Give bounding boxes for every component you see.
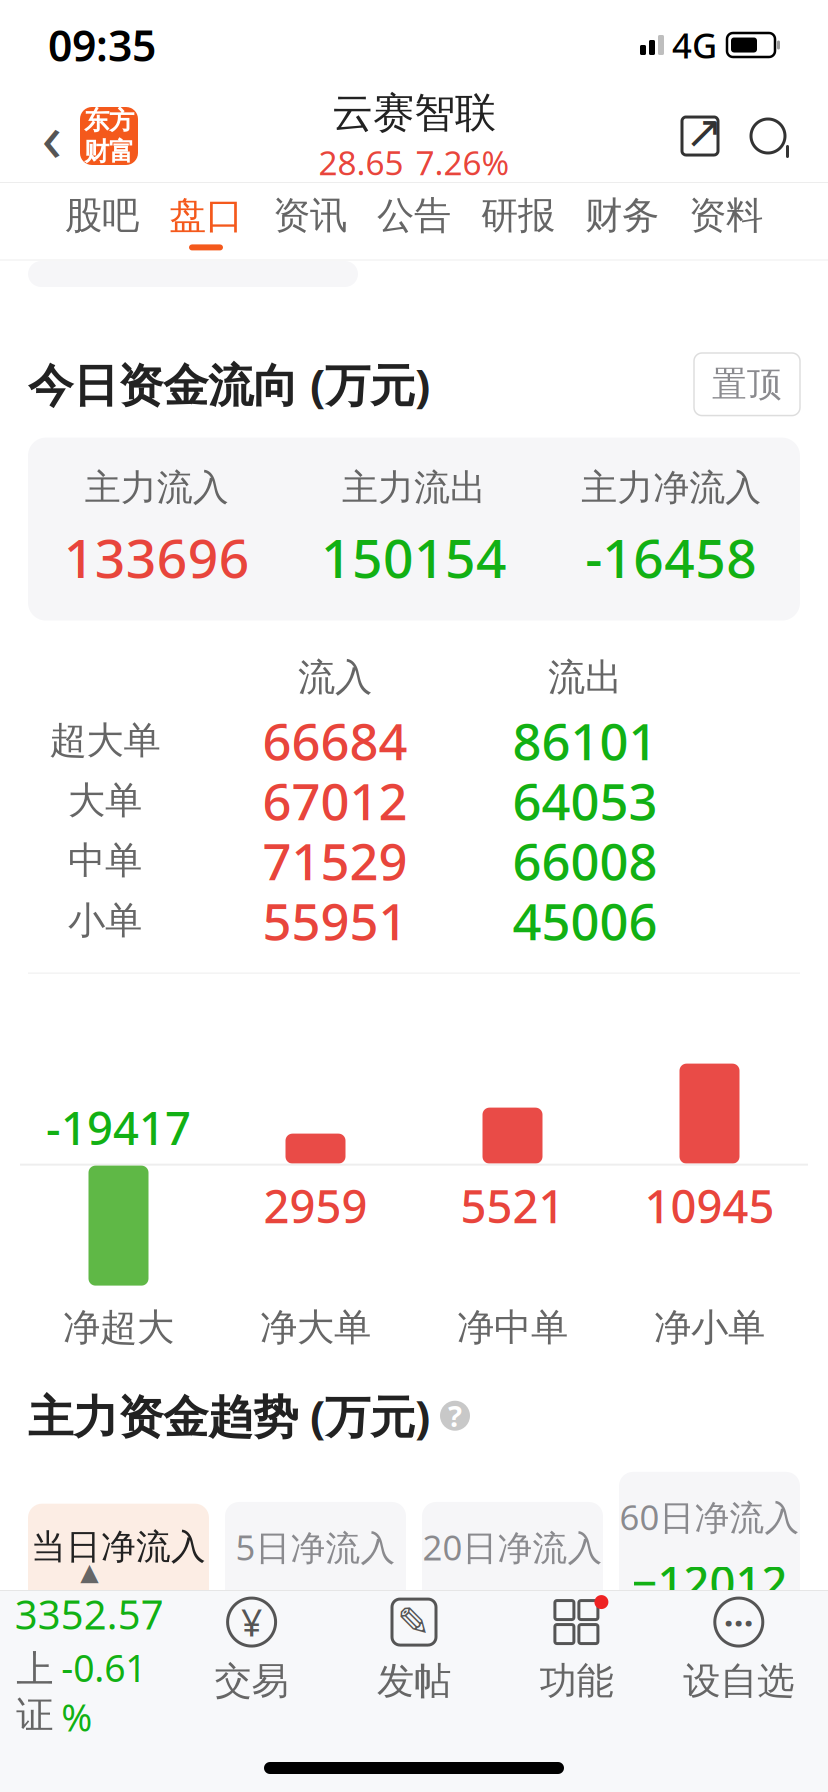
staticText: 财务 — [585, 193, 659, 238]
button[interactable]: ··· — [658, 1591, 820, 1709]
staticText: 云赛智联 — [332, 87, 496, 138]
staticText: 主力流入 — [85, 466, 229, 510]
staticText: 5521 — [460, 1176, 564, 1236]
staticText: 主力流出 — [342, 466, 486, 510]
staticText: 超大单 — [49, 718, 160, 764]
staticText: 小单 — [68, 898, 142, 944]
staticText: 发帖 — [377, 1658, 451, 1704]
staticText: 64053 — [512, 767, 657, 834]
staticText: 流入 — [298, 655, 372, 701]
staticText: 20日净流入 — [422, 1524, 602, 1570]
staticText: −3821 — [250, 1582, 380, 1642]
staticText: 盘口 — [169, 193, 243, 238]
staticText: 45006 — [512, 887, 657, 954]
staticText: 71529 — [262, 827, 407, 894]
staticText: 股吧 — [65, 193, 139, 238]
button[interactable]: 60日净流入 — [619, 1472, 800, 1694]
staticText: 86101 — [512, 707, 657, 774]
staticText: ··· — [724, 1599, 754, 1645]
staticText: 大单 — [68, 778, 142, 824]
staticText: 主力净流入 — [58, 1718, 233, 1761]
button[interactable]: ¥ — [170, 1591, 333, 1709]
staticText: 置顶 — [712, 363, 782, 406]
staticText: 66008 — [512, 827, 657, 894]
staticText: 当日净流入 — [31, 1526, 206, 1568]
staticText: -0.61% — [61, 1643, 146, 1742]
staticText: 4G — [672, 22, 717, 68]
staticText: 55951 — [262, 887, 407, 954]
staticText: 资料 — [689, 193, 763, 238]
button[interactable]: 股吧 — [50, 183, 154, 259]
button[interactable]: 上证指数 3352.57 — [8, 1591, 170, 1709]
button[interactable]: 20日净流入 — [422, 1502, 603, 1664]
staticText: 净小单 — [654, 1305, 765, 1351]
staticText: 净超大 — [63, 1305, 174, 1351]
staticText: ‹ — [41, 92, 62, 180]
staticText: 09:35 — [48, 17, 156, 73]
staticText: 东方 — [84, 105, 134, 136]
button[interactable]: ✎ — [333, 1591, 495, 1709]
staticText: 流出 — [548, 655, 622, 701]
button[interactable]: 财务 — [570, 183, 674, 259]
staticText: ? — [448, 1396, 462, 1435]
staticText: 上证 — [16, 1646, 53, 1738]
staticText: 交易 — [215, 1658, 289, 1704]
staticText: −120122 — [631, 1552, 787, 1672]
staticText: 研报 — [481, 193, 555, 238]
staticText: 3352.57 — [15, 1587, 164, 1641]
button[interactable]: 公告 — [362, 183, 466, 259]
button[interactable]: 当日净流入 — [28, 1504, 209, 1662]
staticText: 主力净流入 — [581, 466, 761, 510]
staticText: −41963 — [434, 1582, 590, 1642]
button[interactable]: 功能 — [495, 1591, 658, 1709]
staticText: -19417 — [46, 1097, 191, 1158]
button[interactable]: 资讯 — [258, 183, 362, 259]
staticText: 5日净流入 — [235, 1524, 395, 1570]
button[interactable]: 置顶 — [694, 353, 800, 416]
button[interactable]: 研报 — [466, 183, 570, 259]
staticText: 主力资金趋势 (万元) — [28, 1386, 430, 1446]
button[interactable]: 东方财富 — [80, 107, 138, 165]
button[interactable]: Back — [24, 100, 80, 172]
staticText: 66684 — [262, 707, 407, 774]
staticText: −16458 — [40, 1580, 196, 1640]
staticText: ✎ — [397, 1599, 431, 1645]
staticText: ↗ — [685, 106, 723, 158]
button[interactable]: 说明 — [440, 1401, 470, 1431]
button[interactable]: 5日净流入 — [225, 1502, 406, 1664]
staticText: 净中单 — [457, 1305, 568, 1351]
staticText: 功能 — [539, 1658, 613, 1704]
staticText: 资讯 — [273, 193, 347, 238]
staticText: 净大单 — [260, 1305, 371, 1351]
staticText: ▲ — [80, 1558, 98, 1585]
staticText: 67012 — [262, 767, 407, 834]
staticText: -16458 — [585, 522, 757, 593]
staticText: 2959 — [263, 1176, 367, 1236]
staticText: 7.26% — [415, 140, 509, 185]
staticText: 公告 — [377, 193, 451, 238]
button[interactable]: 资料 — [674, 183, 778, 259]
staticText: 150154 — [321, 522, 507, 593]
staticText: 60日净流入 — [619, 1494, 799, 1540]
staticText: 设自选 — [683, 1658, 794, 1704]
staticText: 财富 — [84, 136, 134, 167]
button[interactable]: Share — [668, 100, 732, 172]
staticText: 133696 — [64, 522, 250, 593]
staticText: 中单 — [68, 838, 142, 884]
staticText: 10945 — [644, 1176, 774, 1236]
button[interactable]: 盘口 — [154, 183, 258, 259]
button[interactable]: Search — [732, 100, 804, 172]
staticText: 今日资金流向 (万元) — [28, 354, 430, 414]
staticText: ¥ — [241, 1597, 262, 1647]
staticText: 28.65 — [318, 140, 403, 185]
